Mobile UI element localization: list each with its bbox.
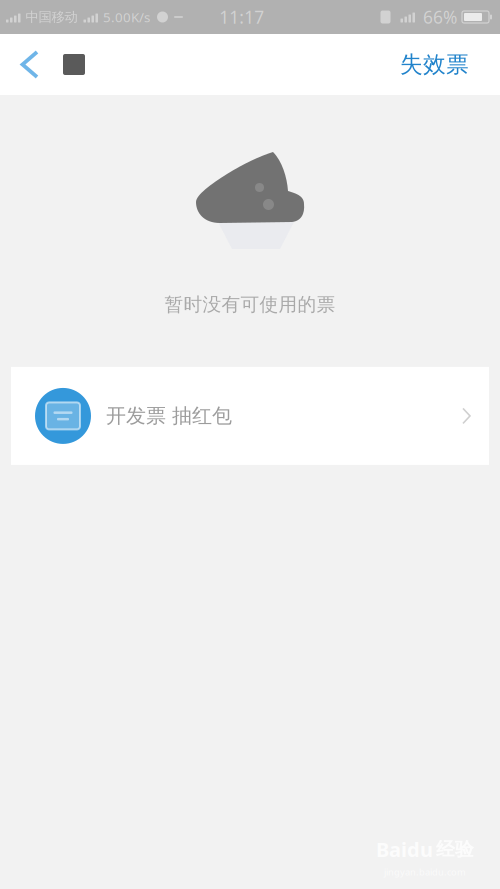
staticText: 失效票 (400, 51, 469, 78)
staticText: 5.00K/s (103, 8, 150, 26)
button[interactable]: Menu (63, 34, 107, 95)
button[interactable]: 失效票 (400, 34, 500, 95)
staticText: 开发票 抽红包 (106, 404, 232, 428)
staticText: 经验 (436, 838, 474, 861)
staticText: Baidu (376, 836, 433, 863)
staticText: 中国移动 (25, 9, 77, 25)
staticText: 11:17 (219, 5, 264, 28)
button[interactable]: Back (0, 34, 63, 95)
staticText: 66% (423, 5, 457, 28)
button[interactable]: 开发票 抽红包 (11, 367, 489, 465)
staticText: 暂时没有可使用的票 (164, 293, 335, 316)
